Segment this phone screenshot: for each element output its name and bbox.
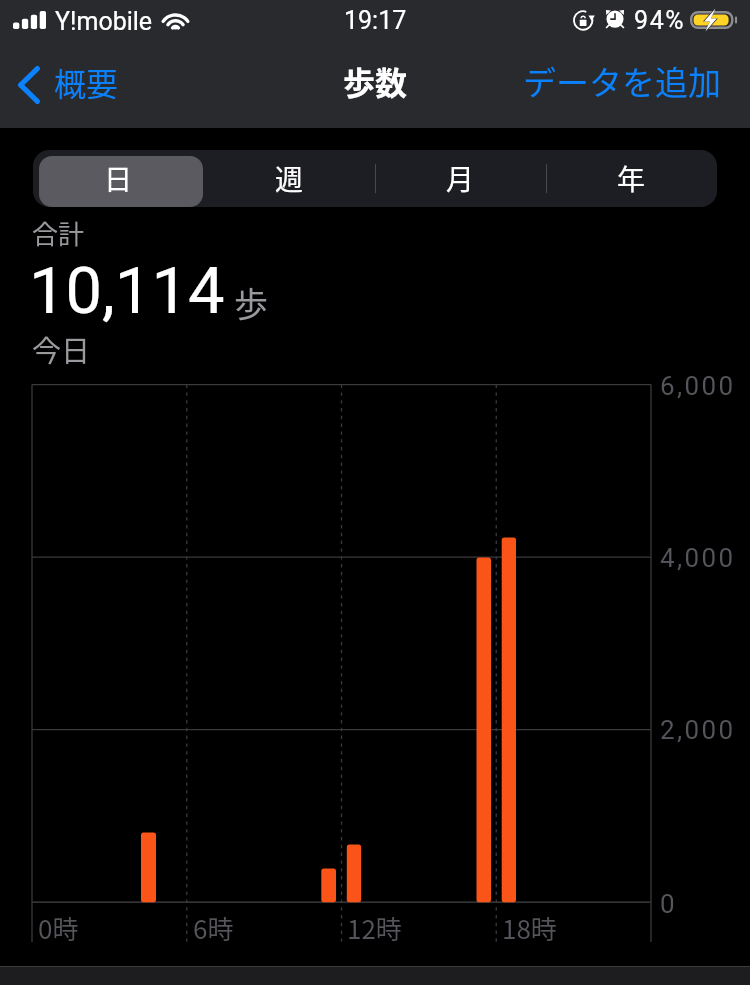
staticText: 歩 [234, 278, 268, 327]
staticText: 歩数 [343, 58, 408, 104]
staticText: 週 [275, 158, 304, 199]
staticText: 4,000 [660, 543, 736, 573]
staticText: 12時 [347, 909, 402, 947]
staticText: 19:17 [344, 6, 407, 35]
button[interactable]: データを追加 [509, 42, 750, 128]
staticText: 6時 [193, 909, 234, 947]
staticText: 18時 [502, 909, 557, 947]
other: Back [18, 66, 40, 104]
staticText: 2,000 [660, 715, 736, 745]
staticText: 0時 [38, 909, 79, 947]
staticText: 10,114 [29, 253, 225, 329]
staticText: 概要 [54, 59, 119, 105]
staticText: Y!mobile [55, 7, 153, 36]
button[interactable]: 月 [375, 150, 546, 207]
button[interactable]: 年 [546, 150, 717, 207]
staticText: 日 [104, 158, 133, 199]
staticText: データを追加 [523, 57, 721, 105]
staticText: 94% [634, 6, 686, 35]
staticText: 今日 [32, 328, 91, 370]
button[interactable]: 週 [204, 150, 375, 207]
staticText: 6,000 [660, 371, 736, 401]
staticText: 0 [660, 889, 678, 919]
staticText: 月 [446, 158, 475, 199]
staticText: 年 [617, 158, 646, 199]
button[interactable]: Back [0, 42, 133, 128]
staticText: 合計 [32, 214, 85, 252]
button[interactable]: 日 [33, 150, 204, 207]
